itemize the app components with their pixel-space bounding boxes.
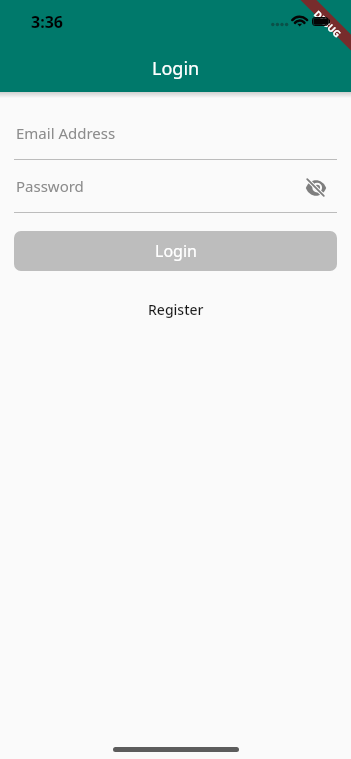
button[interactable]: Show password: [303, 177, 329, 199]
button[interactable]: Login: [14, 231, 337, 271]
staticText: DEBUG: [311, 8, 344, 41]
staticText: Login: [155, 240, 197, 262]
staticText: Password: [16, 176, 84, 196]
staticText: Register: [148, 300, 204, 319]
button[interactable]: Register: [14, 300, 337, 319]
button[interactable]: Email Address: [14, 122, 337, 144]
staticText: 3:36: [31, 11, 63, 33]
staticText: Login: [152, 56, 200, 81]
staticText: Email Address: [16, 123, 116, 143]
button[interactable]: Password: [14, 175, 337, 197]
